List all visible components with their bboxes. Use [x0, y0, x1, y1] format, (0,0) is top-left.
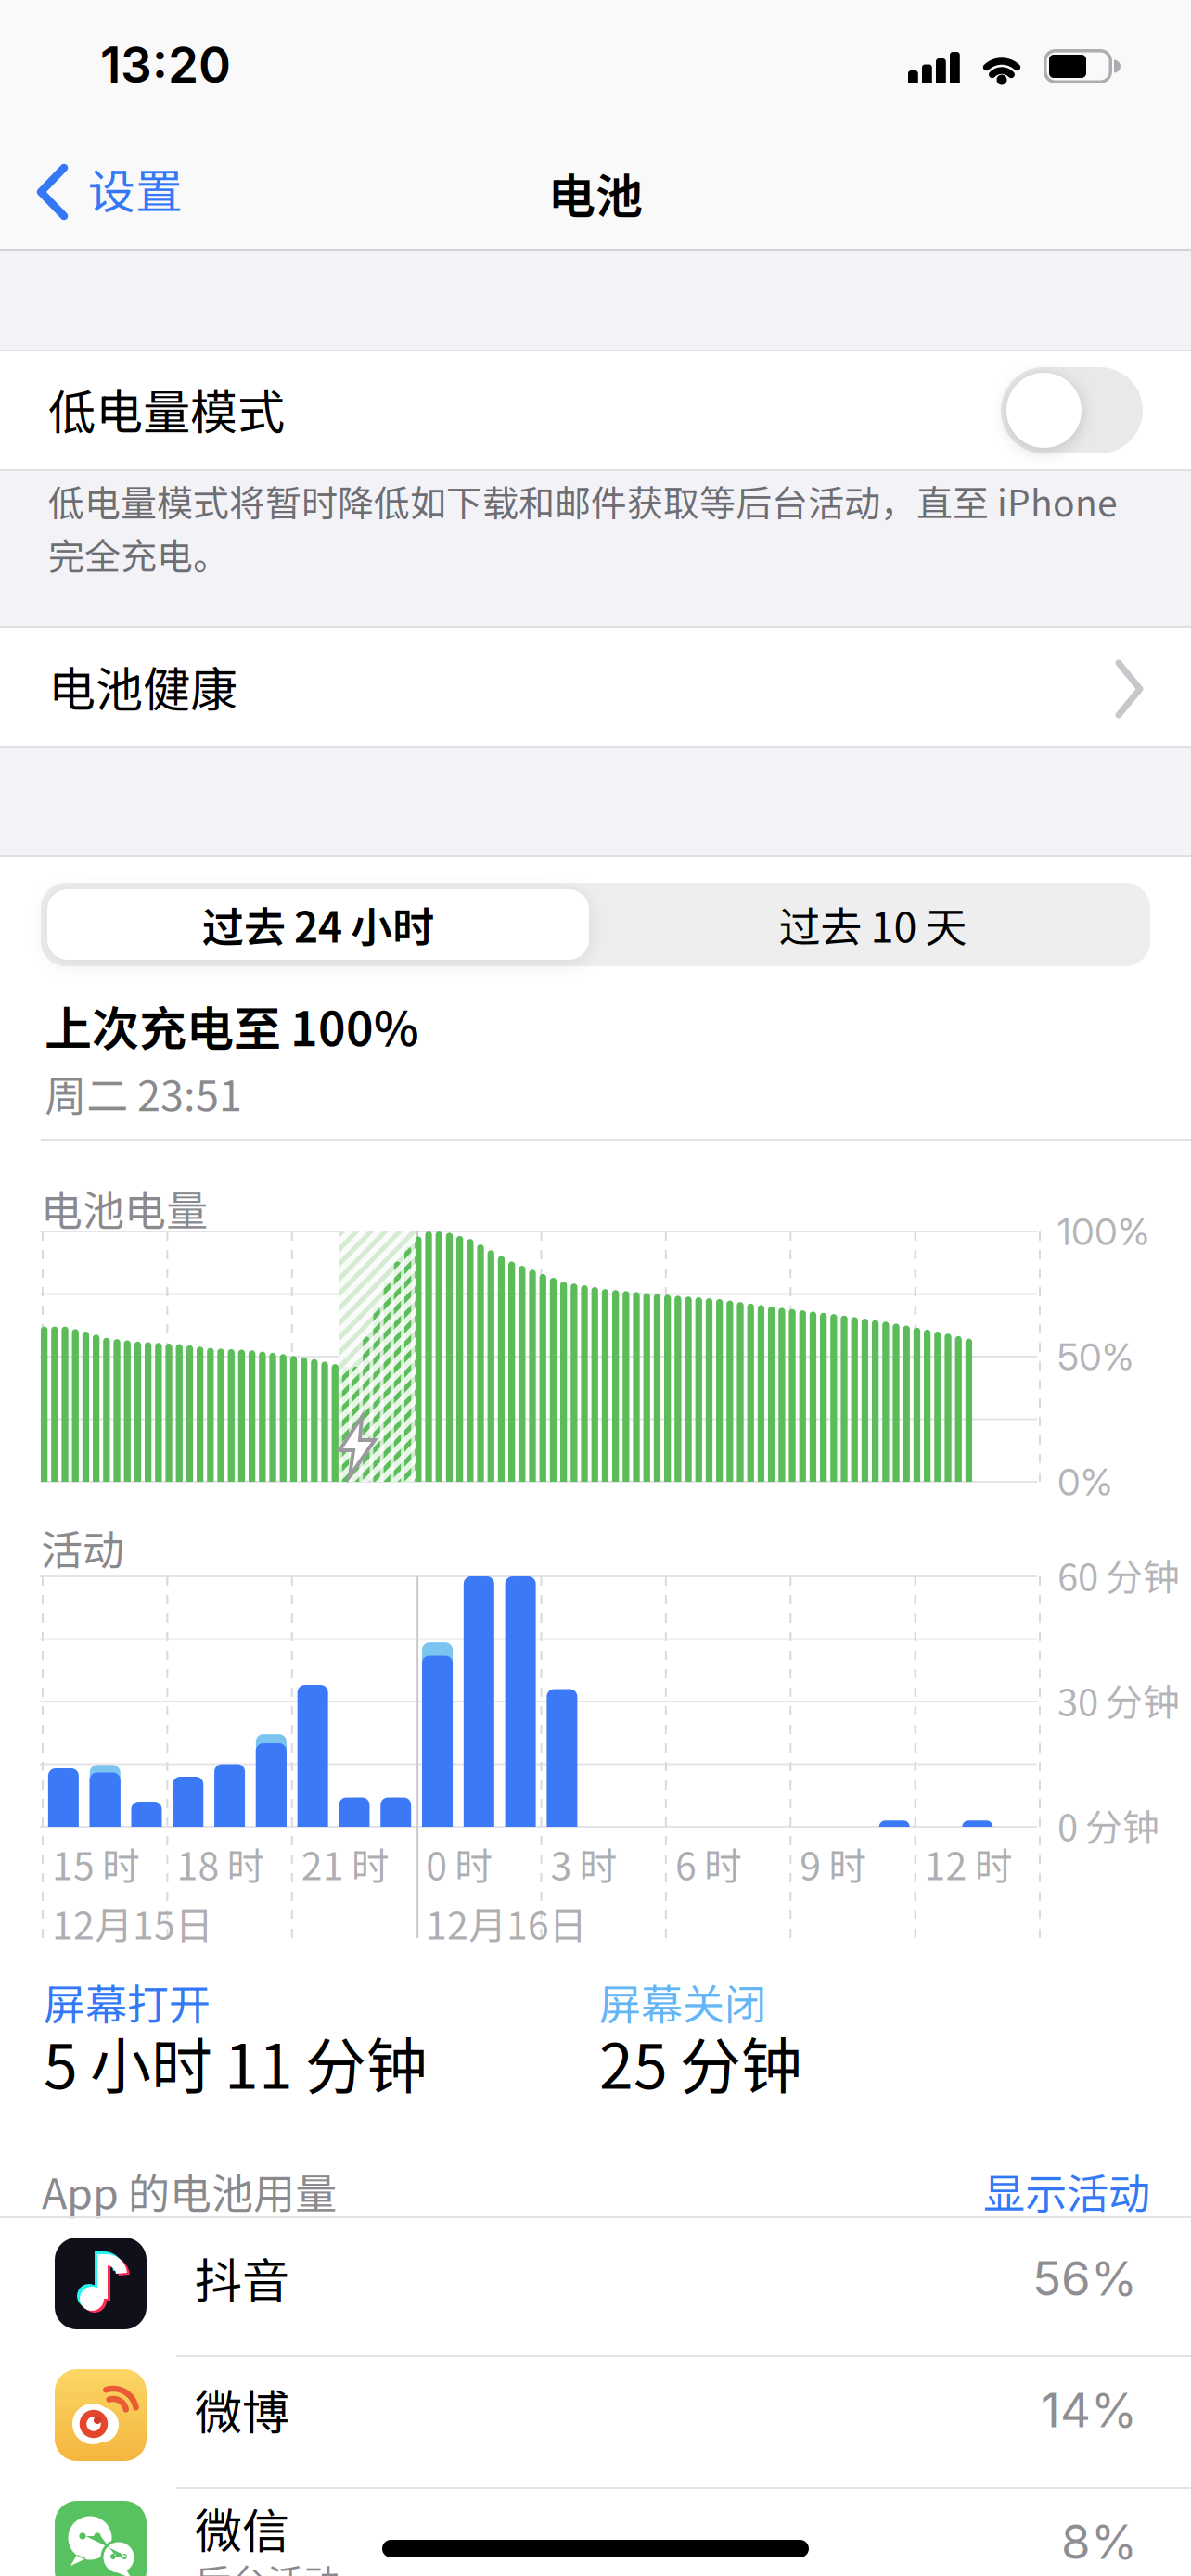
- staticText: 0 分钟: [1057, 1798, 1159, 1852]
- staticText: 低电量模式将暂时降低如下载和邮件获取等后台活动，直至 iPhone: [48, 475, 1118, 527]
- button[interactable]: 电池健康: [0, 628, 1191, 748]
- staticText: 60 分钟: [1057, 1548, 1180, 1601]
- button[interactable]: 微博: [0, 2362, 1191, 2487]
- staticText: 电池: [548, 159, 643, 227]
- staticText: 电池电量: [41, 1178, 208, 1238]
- staticText: 显示活动: [983, 2161, 1150, 2221]
- staticText: 25 分钟: [599, 2018, 802, 2106]
- staticText: 微博: [195, 2375, 289, 2443]
- staticText: 设置: [88, 154, 183, 222]
- staticText: 过去 24 小时: [202, 894, 434, 955]
- staticText: 完全充电。: [48, 528, 229, 580]
- staticText: 周二 23:51: [45, 1063, 242, 1123]
- staticText: 12月15日: [52, 1895, 213, 1950]
- staticText: 过去 10 天: [779, 894, 967, 955]
- staticText: 5 小时 11 分钟: [44, 2018, 428, 2106]
- staticText: 0 时: [426, 1836, 493, 1891]
- staticText: App 的电池用量: [42, 2161, 337, 2221]
- staticText: 0%: [1057, 1460, 1112, 1504]
- button[interactable]: 过去 10 天: [595, 883, 1150, 966]
- staticText: 屏幕打开: [44, 1971, 211, 2032]
- button[interactable]: 过去 24 小时: [41, 883, 595, 966]
- button[interactable]: 抖音: [0, 2230, 1191, 2355]
- staticText: 50%: [1057, 1334, 1133, 1379]
- staticText: 9 时: [800, 1836, 867, 1891]
- staticText: 后台活动: [195, 2554, 339, 2576]
- button[interactable]: 显示活动: [983, 2161, 1150, 2221]
- staticText: 12月16日: [426, 1895, 587, 1950]
- staticText: 电池健康: [48, 652, 237, 720]
- staticText: 抖音: [195, 2243, 289, 2312]
- staticText: 13:20: [100, 35, 231, 95]
- button[interactable]: 返回设置: [35, 154, 202, 226]
- staticText: 低电量模式: [48, 375, 285, 443]
- staticText: 18 时: [177, 1836, 265, 1891]
- staticText: 14%: [1041, 2381, 1137, 2438]
- staticText: 15 时: [52, 1836, 140, 1891]
- staticText: 30 分钟: [1057, 1673, 1180, 1727]
- staticText: 微信: [195, 2493, 289, 2562]
- staticText: 活动: [41, 1517, 124, 1577]
- staticText: 3 时: [551, 1836, 617, 1891]
- staticText: 8%: [1061, 2513, 1137, 2570]
- button[interactable]: 微信: [0, 2493, 1191, 2576]
- staticText: 56%: [1032, 2250, 1137, 2307]
- staticText: 上次充电至 100%: [45, 991, 419, 1060]
- button[interactable]: 低电量模式: [1001, 367, 1143, 453]
- staticText: 21 时: [301, 1836, 389, 1891]
- staticText: 6 时: [675, 1836, 742, 1891]
- staticText: 12 时: [924, 1836, 1013, 1891]
- staticText: 屏幕关闭: [599, 1971, 766, 2032]
- staticText: 100%: [1057, 1209, 1149, 1254]
